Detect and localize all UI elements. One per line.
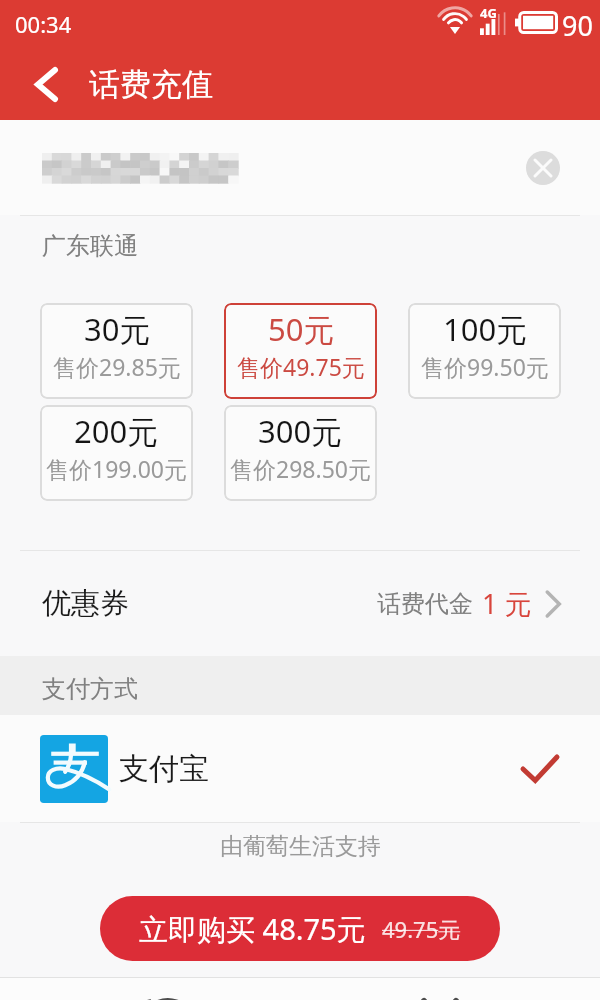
button[interactable]: 立即购买 48.75元 (100, 896, 500, 961)
staticText: 售价199.00元 (46, 453, 187, 484)
staticText: 话费代金 (377, 589, 473, 619)
button[interactable]: 优惠券 (0, 551, 600, 656)
button[interactable]: 300元 (224, 405, 377, 501)
staticText: 49.75元 (382, 914, 461, 944)
staticText: 立即购买 48.75元 (139, 909, 366, 949)
staticText: 售价298.50元 (230, 453, 371, 484)
button[interactable]: Back (11, 48, 81, 120)
staticText: 由葡萄生活支持 (220, 832, 381, 861)
staticText: 200元 (74, 410, 159, 452)
staticText: 支付方式 (42, 674, 138, 704)
button[interactable]: 30元 (40, 303, 193, 399)
staticText: 1 元 (482, 585, 532, 622)
button[interactable]: 支付宝 (0, 715, 600, 822)
staticText: 话费充值 (89, 65, 213, 104)
staticText: 00:34 (15, 9, 72, 39)
staticText: 100元 (443, 308, 528, 350)
button[interactable]: 100元 (408, 303, 561, 399)
staticText: 广东联通 (42, 231, 138, 261)
staticText: 90 (562, 7, 593, 44)
staticText: 售价99.50元 (421, 351, 549, 382)
staticText: 售价49.75元 (237, 351, 365, 382)
staticText: 优惠券 (42, 585, 129, 622)
button[interactable]: 200元 (40, 405, 193, 501)
button[interactable]: Clear (526, 151, 560, 185)
staticText: 4G (480, 4, 497, 22)
staticText: 支付宝 (119, 750, 209, 788)
staticText: 售价29.85元 (53, 351, 181, 382)
button[interactable]: 50元 (224, 303, 377, 399)
staticText: 30元 (84, 308, 151, 350)
staticText: 50元 (268, 308, 335, 350)
staticText: 300元 (258, 410, 343, 452)
